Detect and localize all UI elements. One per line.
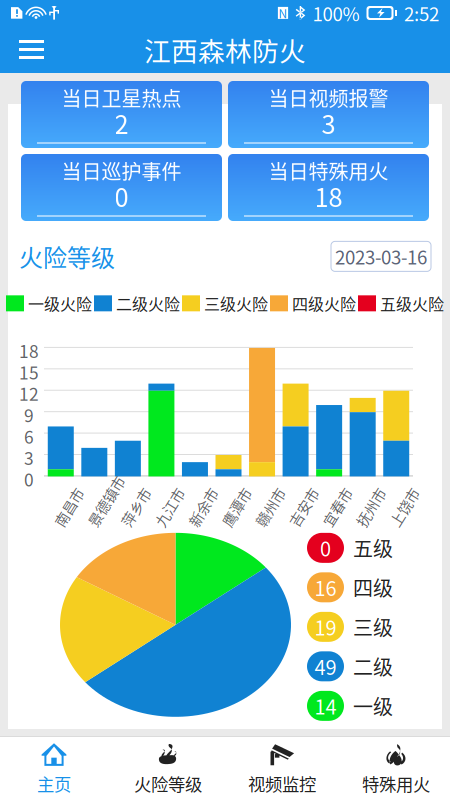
- staticText: 九江市: [150, 519, 192, 540]
- staticText: 3: [321, 105, 335, 141]
- staticText: N: [278, 4, 287, 22]
- staticText: 上饶市: [384, 519, 426, 540]
- staticText: 南昌市: [49, 519, 91, 540]
- staticText: 当日特殊用火: [268, 156, 388, 185]
- staticText: 9: [24, 402, 34, 427]
- staticText: 三级: [353, 612, 393, 641]
- staticText: 6: [24, 424, 34, 449]
- staticText: 0: [320, 533, 331, 562]
- staticText: 江西森林防火: [144, 30, 306, 69]
- staticText: 2:52: [404, 0, 439, 26]
- button[interactable]: Menu: [13, 33, 50, 65]
- staticText: 五级: [353, 533, 393, 562]
- staticText: 抚州市: [351, 519, 393, 540]
- button[interactable]: 当日卫星热点: [21, 81, 222, 148]
- staticText: 鹰潭市: [217, 519, 259, 540]
- staticText: 特殊用火: [362, 771, 430, 796]
- button[interactable]: 主页: [0, 737, 111, 800]
- staticText: 18: [19, 338, 39, 363]
- staticText: 15: [19, 359, 39, 384]
- staticText: 18: [314, 178, 342, 214]
- staticText: 二级: [353, 652, 393, 681]
- staticText: 19: [314, 612, 336, 641]
- staticText: 主页: [37, 771, 71, 796]
- staticText: 0: [24, 466, 34, 491]
- staticText: 16: [314, 573, 336, 602]
- staticText: 火险等级: [134, 771, 202, 796]
- staticText: 14: [314, 691, 336, 720]
- staticText: 3: [24, 445, 34, 470]
- staticText: 一级: [353, 691, 393, 720]
- staticText: 视频监控: [248, 771, 316, 796]
- staticText: 四级火险: [292, 292, 356, 315]
- staticText: 12: [19, 381, 39, 406]
- staticText: 当日卫星热点: [61, 83, 181, 112]
- staticText: 当日巡护事件: [61, 156, 181, 185]
- staticText: 三级火险: [204, 292, 268, 315]
- button[interactable]: 当日巡护事件: [21, 154, 222, 221]
- staticText: 五级火险: [380, 292, 444, 315]
- staticText: 景德镇市: [82, 519, 138, 540]
- staticText: 0: [114, 178, 128, 214]
- staticText: 49: [314, 652, 336, 681]
- staticText: 二级火险: [116, 292, 180, 315]
- button[interactable]: 火险等级: [111, 737, 225, 800]
- button[interactable]: 特殊用火: [339, 737, 450, 800]
- staticText: 火险等级: [19, 239, 115, 274]
- staticText: 宜春市: [317, 519, 359, 540]
- staticText: 吉安市: [284, 519, 326, 540]
- staticText: 100%: [312, 0, 359, 26]
- button[interactable]: 当日特殊用火: [228, 154, 429, 221]
- staticText: 萍乡市: [116, 519, 158, 540]
- staticText: 新余市: [183, 519, 225, 540]
- staticText: 四级: [353, 573, 393, 602]
- staticText: 当日视频报警: [268, 83, 388, 112]
- staticText: 一级火险: [28, 292, 92, 315]
- staticText: 2023-03-16: [335, 243, 427, 270]
- button[interactable]: 当日视频报警: [228, 81, 429, 148]
- staticText: 2: [114, 105, 128, 141]
- button[interactable]: 2023-03-16: [331, 241, 431, 271]
- staticText: 赣州市: [250, 519, 292, 540]
- button[interactable]: 视频监控: [225, 737, 339, 800]
